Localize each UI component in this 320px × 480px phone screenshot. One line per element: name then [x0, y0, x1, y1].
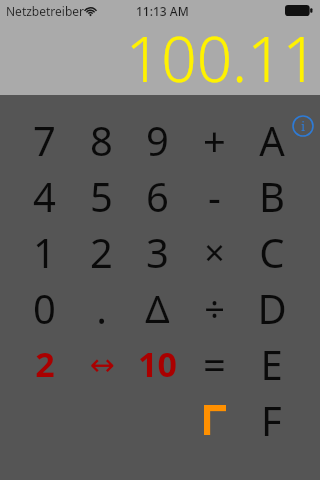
button[interactable]: 1	[16, 224, 73, 280]
staticText: E	[260, 337, 283, 391]
button[interactable]: ×	[186, 224, 243, 280]
button[interactable]: 100.11	[0, 0, 320, 95]
staticText: 8	[90, 113, 113, 167]
button[interactable]: ÷	[186, 280, 243, 336]
button[interactable]: E	[243, 336, 300, 392]
staticText: 1	[33, 225, 56, 279]
staticText: A	[259, 113, 285, 167]
staticText: 0	[33, 281, 56, 335]
button[interactable]: .	[73, 280, 130, 336]
staticText: 6	[146, 169, 169, 223]
staticText: =	[203, 337, 226, 391]
staticText: -	[208, 169, 221, 223]
staticText: ×	[204, 228, 225, 277]
staticText: +	[203, 113, 226, 167]
staticText: Netzbetreiber	[6, 3, 85, 19]
staticText: .	[96, 281, 107, 335]
button[interactable]: D	[243, 280, 300, 336]
staticText: 10	[138, 341, 177, 387]
staticText: 9	[146, 113, 169, 167]
button[interactable]: 9	[129, 112, 186, 168]
staticText: ↔	[89, 347, 115, 382]
button[interactable]: 7	[16, 112, 73, 168]
button[interactable]: 2	[16, 336, 73, 392]
staticText: D	[257, 281, 287, 335]
staticText: 4	[33, 169, 56, 223]
staticText: 100.11	[125, 16, 318, 100]
button[interactable]: F	[243, 392, 300, 448]
staticText: 2	[90, 225, 113, 279]
button[interactable]: 8	[73, 112, 130, 168]
staticText: 3	[146, 225, 169, 279]
staticText: B	[259, 169, 285, 223]
button[interactable]: 0	[16, 280, 73, 336]
staticText: C	[259, 225, 285, 279]
staticText: 5	[90, 169, 113, 223]
button[interactable]: ↔	[73, 336, 130, 392]
button[interactable]: B	[243, 168, 300, 224]
button[interactable]: 10	[129, 336, 186, 392]
staticText: Δ	[145, 282, 170, 334]
button[interactable]: -	[186, 168, 243, 224]
button[interactable]: +	[186, 112, 243, 168]
button[interactable]: A	[243, 112, 300, 168]
button[interactable]: Gamma	[186, 392, 243, 448]
button[interactable]: 5	[73, 168, 130, 224]
button[interactable]: Δ	[129, 280, 186, 336]
button[interactable]: 2	[73, 224, 130, 280]
staticText: i	[301, 117, 306, 135]
staticText: 2	[35, 341, 55, 387]
staticText: 11:13 AM	[136, 3, 189, 19]
button[interactable]: Info	[292, 115, 314, 137]
staticText: ÷	[204, 284, 225, 333]
button[interactable]: =	[186, 336, 243, 392]
button[interactable]: 3	[129, 224, 186, 280]
staticText: F	[261, 393, 282, 447]
button[interactable]: 4	[16, 168, 73, 224]
staticText: 7	[33, 113, 56, 167]
button[interactable]: 6	[129, 168, 186, 224]
button[interactable]: C	[243, 224, 300, 280]
